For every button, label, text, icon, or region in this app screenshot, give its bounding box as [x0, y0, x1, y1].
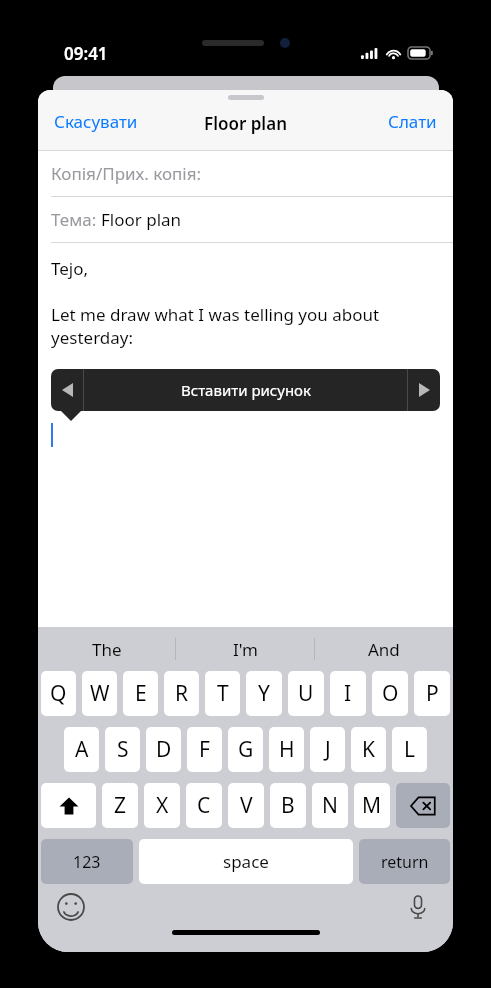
button[interactable]: F	[187, 727, 222, 772]
button[interactable]: P	[414, 671, 450, 716]
button[interactable]: W	[82, 671, 117, 716]
button[interactable]: Y	[246, 671, 282, 716]
button[interactable]: M	[354, 783, 390, 828]
staticText: 123	[73, 851, 101, 873]
staticText: L	[404, 735, 416, 764]
button[interactable]: S	[105, 727, 140, 772]
button[interactable]: K	[351, 727, 386, 772]
staticText: O	[382, 679, 399, 708]
staticText: Тема:	[51, 208, 101, 231]
staticText: Скасувати	[54, 110, 138, 133]
staticText: W	[90, 679, 110, 708]
staticText: N	[322, 791, 338, 820]
staticText: H	[279, 735, 295, 764]
staticText: I'm	[233, 638, 258, 661]
staticText: 09:41	[64, 42, 108, 65]
button[interactable]: J	[310, 727, 345, 772]
staticText: Слати	[388, 110, 437, 133]
button[interactable]: L	[392, 727, 427, 772]
staticText: I	[344, 679, 352, 708]
staticText: J	[325, 735, 331, 764]
staticText: Floor plan	[204, 112, 287, 135]
staticText: C	[197, 791, 211, 820]
staticText: space	[223, 850, 269, 873]
button[interactable]: The	[38, 627, 175, 671]
button[interactable]: 123	[41, 839, 133, 884]
button[interactable]: D	[146, 727, 181, 772]
staticText: Floor plan	[101, 208, 182, 231]
staticText: D	[156, 735, 172, 764]
button[interactable]: Слати	[376, 100, 453, 141]
staticText: T	[217, 679, 229, 708]
button[interactable]: E	[123, 671, 158, 716]
button[interactable]: Копія/Прих. копія:	[38, 151, 453, 196]
button[interactable]: And	[315, 627, 453, 671]
button[interactable]: X	[144, 783, 180, 828]
button[interactable]: O	[372, 671, 408, 716]
button[interactable]: U	[288, 671, 324, 716]
staticText: K	[362, 735, 375, 764]
staticText: G	[238, 735, 254, 764]
staticText: Z	[114, 791, 127, 820]
staticText: M	[362, 791, 382, 820]
staticText: B	[281, 791, 295, 820]
staticText: A	[75, 735, 89, 764]
button[interactable]: R	[164, 671, 199, 716]
button[interactable]: N	[312, 783, 348, 828]
staticText: U	[298, 679, 314, 708]
staticText: F	[199, 735, 210, 764]
staticText: Y	[258, 679, 270, 708]
button[interactable]: T	[205, 671, 240, 716]
button[interactable]: I'm	[176, 627, 314, 671]
button[interactable]: return	[359, 839, 450, 884]
staticText: Q	[50, 679, 67, 708]
staticText: return	[381, 851, 429, 873]
staticText: The	[92, 638, 122, 661]
button[interactable]: C	[186, 783, 222, 828]
button[interactable]: I	[330, 671, 366, 716]
button[interactable]: Previous	[51, 369, 83, 411]
staticText: E	[135, 679, 147, 708]
button[interactable]: V	[228, 783, 264, 828]
staticText: S	[117, 735, 129, 764]
button[interactable]: A	[64, 727, 99, 772]
staticText: P	[426, 679, 439, 708]
button[interactable]: Вставити рисунок	[84, 369, 407, 411]
button[interactable]: Backspace	[396, 783, 450, 828]
button[interactable]: H	[269, 727, 304, 772]
button[interactable]: Q	[41, 671, 76, 716]
staticText: Let me draw what I was telling you about…	[51, 303, 380, 349]
staticText: Копія/Прих. копія:	[51, 162, 202, 185]
staticText: X	[156, 791, 169, 820]
button[interactable]: Shift	[41, 783, 96, 828]
button[interactable]: Dictation	[401, 890, 435, 924]
staticText: R	[175, 679, 189, 708]
button[interactable]: Тема:	[38, 197, 453, 242]
button[interactable]: space	[139, 839, 353, 884]
button[interactable]: G	[228, 727, 263, 772]
staticText: V	[240, 791, 253, 820]
button[interactable]: Next	[408, 369, 440, 411]
staticText: Вставити рисунок	[181, 380, 311, 400]
staticText: And	[368, 638, 400, 661]
button[interactable]: Скасувати	[38, 100, 150, 141]
button[interactable]: B	[270, 783, 306, 828]
staticText: Tejo,	[51, 257, 89, 280]
button[interactable]: Emoji	[54, 890, 88, 924]
button[interactable]: Z	[102, 783, 138, 828]
